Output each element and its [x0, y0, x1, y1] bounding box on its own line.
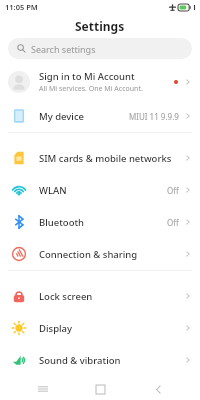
- staticText: MIUI 11 9.9.9: [129, 111, 179, 122]
- staticText: Settings: [75, 18, 125, 34]
- button[interactable]: Bluetooth: [0, 206, 200, 238]
- button[interactable]: Home: [85, 378, 115, 400]
- staticText: All Mi services. One Mi Account.: [39, 84, 143, 94]
- staticText: Sound & vibration: [39, 354, 184, 367]
- staticText: Off: [167, 217, 179, 228]
- button[interactable]: Display: [0, 312, 200, 344]
- button[interactable]: Lock screen: [0, 280, 200, 312]
- button[interactable]: WLAN: [0, 174, 200, 206]
- staticText: My device: [39, 110, 129, 123]
- staticText: Sign in to Mi Account: [39, 70, 135, 83]
- staticText: Display: [39, 322, 184, 335]
- button[interactable]: Recents: [28, 378, 58, 400]
- button[interactable]: Connection & sharing: [0, 238, 200, 270]
- staticText: WLAN: [39, 184, 167, 197]
- staticText: Lock screen: [39, 290, 184, 303]
- staticText: SIM cards & mobile networks: [39, 152, 184, 165]
- staticText: Bluetooth: [39, 216, 167, 229]
- button[interactable]: SIM cards & mobile networks: [0, 142, 200, 174]
- button[interactable]: Sign in to Mi Account: [0, 64, 200, 100]
- button[interactable]: Back: [143, 378, 173, 400]
- button[interactable]: Sound & vibration: [0, 344, 200, 376]
- staticText: Search settings: [31, 43, 96, 55]
- staticText: Connection & sharing: [39, 248, 184, 261]
- button[interactable]: Search settings: [8, 38, 192, 59]
- staticText: Off: [167, 185, 179, 196]
- staticText: 11:05 PM: [5, 2, 38, 12]
- button[interactable]: My device: [0, 100, 200, 132]
